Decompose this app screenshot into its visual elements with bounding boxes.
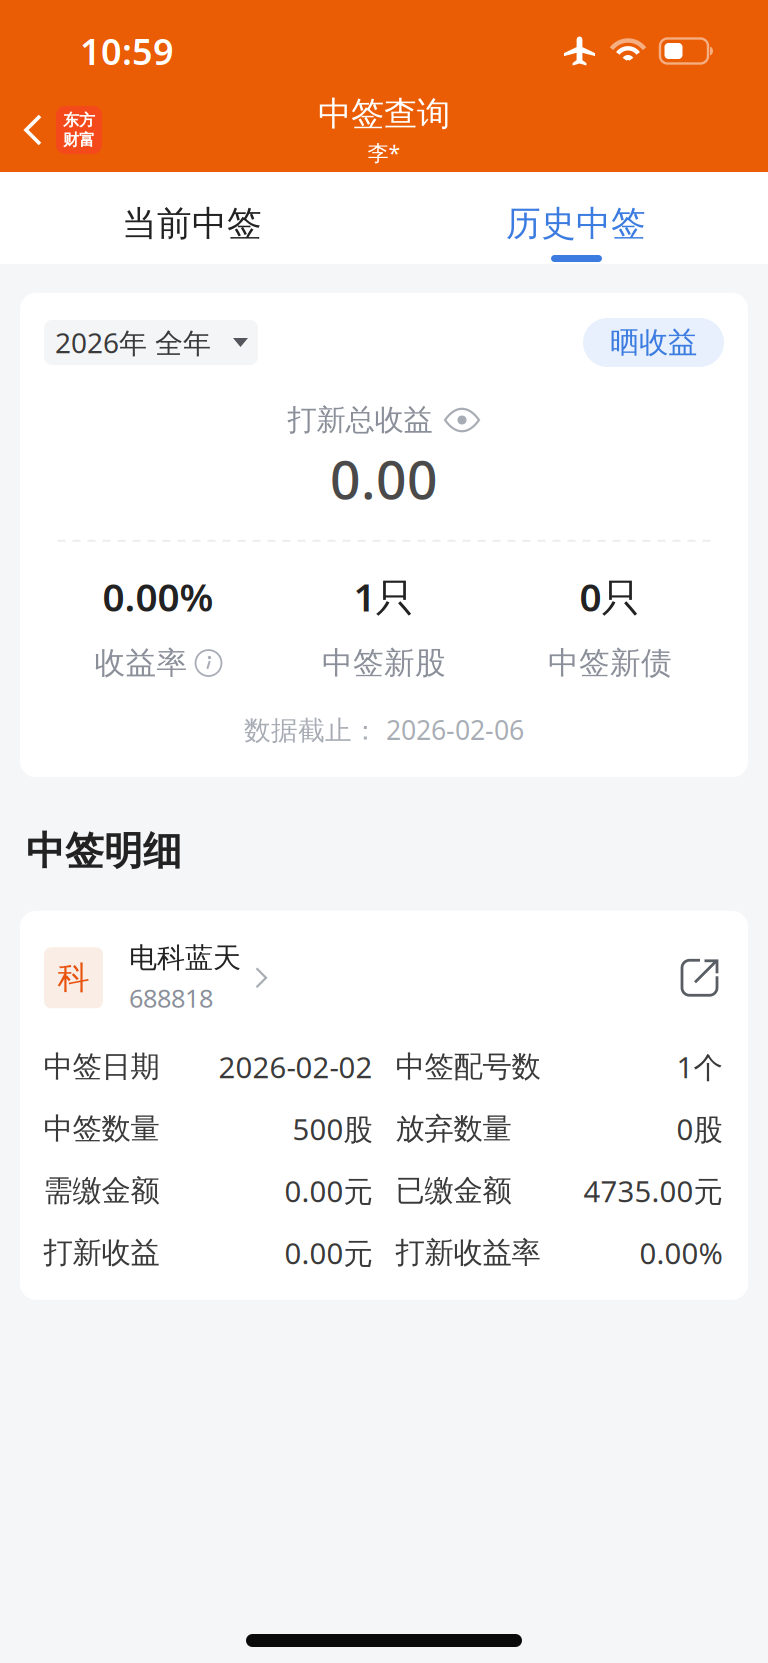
staticText: 0.00 <box>330 443 438 514</box>
staticText: 科 <box>57 958 89 997</box>
staticText: 打新收益 <box>43 1235 159 1271</box>
staticText: 10:59 <box>80 27 174 75</box>
button[interactable]: 当前中签 <box>0 172 384 245</box>
staticText: 中签新债 <box>548 644 672 682</box>
staticText: 数据截止： 2026-02-06 <box>244 712 524 747</box>
staticText: 中签数量 <box>43 1111 159 1147</box>
staticText: 中签查询 <box>318 93 450 134</box>
staticText: 中签明细 <box>26 827 182 875</box>
staticText: 电科蓝天 <box>129 941 241 975</box>
staticText: 李* <box>367 138 400 167</box>
staticText: 688818 <box>129 981 213 1015</box>
staticText: 中签日期 <box>43 1049 159 1085</box>
staticText: 0.00元 <box>284 1171 372 1210</box>
staticText: 已缴金额 <box>395 1173 511 1209</box>
staticText: 中签新股 <box>322 644 446 682</box>
button[interactable]: 历史中签 <box>384 172 768 245</box>
staticText: 0.00元 <box>284 1233 372 1272</box>
button[interactable]: 分享 <box>680 958 722 997</box>
staticText: 0.00% <box>102 571 213 622</box>
button[interactable]: 2026年 全年 <box>44 320 258 365</box>
staticText: 财富 <box>63 130 95 150</box>
staticText: 放弃数量 <box>395 1111 511 1147</box>
staticText: 需缴金额 <box>43 1173 159 1209</box>
staticText: 500股 <box>292 1109 372 1148</box>
button[interactable]: 科 <box>44 941 268 1015</box>
staticText: 历史中签 <box>506 202 646 245</box>
staticText: 打新总收益 <box>287 402 432 438</box>
staticText: 收益率 <box>94 644 187 682</box>
staticText: 中签配号数 <box>395 1049 540 1085</box>
button[interactable]: 晒收益 <box>583 318 724 367</box>
staticText: 2026年 全年 <box>55 324 211 361</box>
staticText: 东方 <box>63 110 95 130</box>
staticText: 4735.00元 <box>583 1171 722 1210</box>
staticText: 晒收益 <box>610 324 697 360</box>
staticText: 当前中签 <box>122 202 262 245</box>
staticText: 2026-02-02 <box>218 1047 372 1086</box>
staticText: 1个 <box>676 1047 722 1086</box>
staticText: 0.00% <box>639 1233 722 1272</box>
staticText: 0只 <box>579 571 640 622</box>
staticText: 1只 <box>353 571 414 622</box>
staticText: 0股 <box>676 1109 722 1148</box>
staticText: 打新收益率 <box>395 1235 540 1271</box>
button[interactable]: 返回 <box>0 88 112 172</box>
